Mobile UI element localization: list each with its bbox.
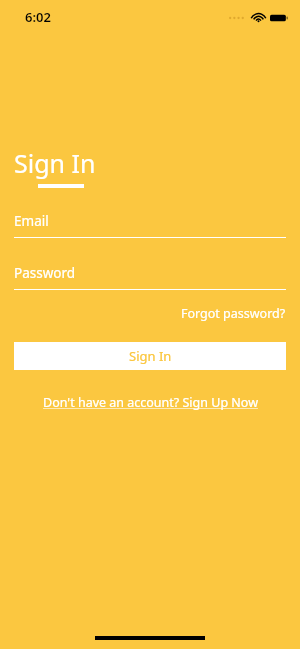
staticText: Sign In — [14, 146, 96, 180]
button[interactable]: Sign In — [14, 342, 286, 370]
staticText: Forgot password? — [181, 305, 286, 322]
staticText: 6:02 — [25, 8, 51, 26]
staticText: Sign In — [129, 347, 172, 365]
staticText: Email — [14, 212, 49, 230]
staticText: Password — [14, 264, 76, 282]
staticText: Don't have an account? Sign Up Now — [43, 394, 258, 411]
button[interactable]: Email — [14, 212, 286, 238]
button[interactable]: Forgot password? — [181, 305, 286, 322]
button[interactable]: Don't have an account? Sign Up Now — [43, 394, 258, 411]
button[interactable]: Password — [14, 264, 286, 290]
